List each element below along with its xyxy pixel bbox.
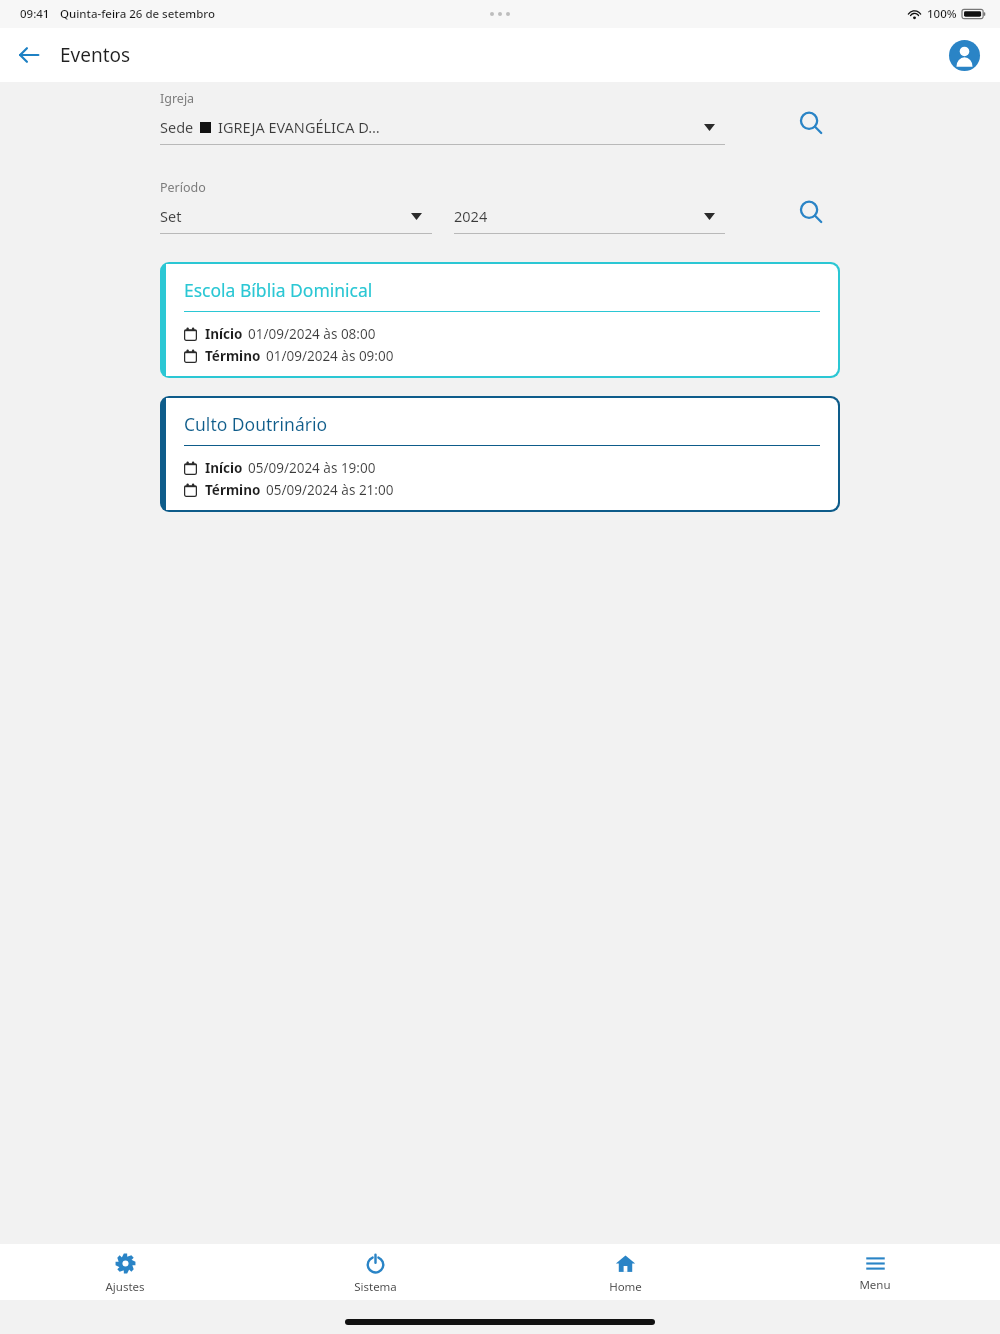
staticText: Escola Bíblia Dominical [184, 278, 373, 302]
button[interactable]: Pesquisar período [789, 190, 833, 234]
button[interactable]: Conta do usuário [942, 33, 986, 77]
button[interactable]: Pesquisar igreja [789, 101, 833, 145]
staticText: Ajustes [105, 1279, 145, 1295]
button[interactable]: Culto Doutrinário [160, 396, 840, 512]
button[interactable]: Menu [750, 1244, 1000, 1300]
button[interactable]: Home [500, 1244, 750, 1300]
staticText: 09:41 [20, 6, 50, 22]
staticText: 100% [927, 6, 957, 22]
button[interactable]: Voltar [8, 34, 50, 76]
staticText: Menu [859, 1277, 891, 1293]
staticText: Período [160, 179, 206, 196]
staticText: Término [205, 481, 261, 499]
staticText: IGREJA EVANGÉLICA D… [218, 117, 380, 137]
staticText: Término [205, 347, 261, 365]
staticText: 05/09/2024 às 19:00 [248, 459, 376, 477]
staticText: Set [160, 206, 182, 226]
staticText: Sistema [354, 1279, 397, 1295]
button[interactable]: Ajustes [0, 1244, 250, 1300]
staticText: Início [205, 459, 243, 477]
staticText: Início [205, 325, 243, 343]
staticText: 2024 [454, 206, 488, 226]
button[interactable]: Sistema [250, 1244, 500, 1300]
button[interactable]: 2024 [454, 206, 725, 226]
button[interactable]: Escola Bíblia Dominical [160, 262, 840, 378]
staticText: Igreja [160, 90, 195, 107]
staticText: Sede [160, 117, 194, 137]
button[interactable]: Sede [160, 117, 725, 137]
staticText: 05/09/2024 às 21:00 [266, 481, 394, 499]
staticText: Quinta-feira 26 de setembro [60, 6, 215, 22]
button[interactable]: Set [160, 206, 432, 226]
staticText: 01/09/2024 às 08:00 [248, 325, 376, 343]
staticText: 01/09/2024 às 09:00 [266, 347, 394, 365]
staticText: Home [609, 1279, 642, 1295]
staticText: Culto Doutrinário [184, 412, 328, 436]
staticText: Eventos [60, 42, 131, 68]
